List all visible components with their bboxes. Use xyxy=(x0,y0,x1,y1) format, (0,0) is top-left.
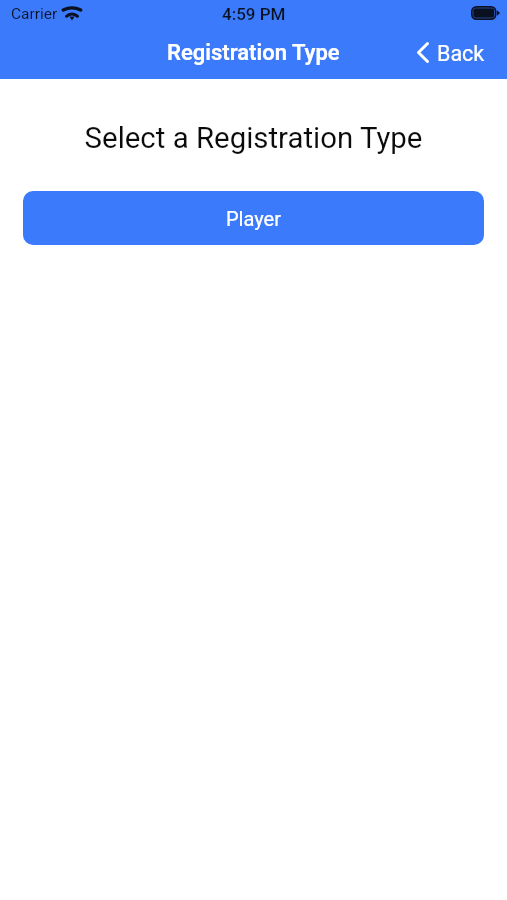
button[interactable]: Back xyxy=(405,35,507,72)
staticText: Carrier xyxy=(11,5,58,23)
staticText: Registration Type xyxy=(167,40,340,66)
other: Battery full xyxy=(471,6,500,20)
staticText: Back xyxy=(437,41,485,66)
staticText: Player xyxy=(226,207,281,230)
button[interactable]: Player xyxy=(23,191,484,245)
staticText: 4:59 PM xyxy=(222,4,286,24)
staticText: Select a Registration Type xyxy=(0,121,507,155)
other: Wi-Fi signal xyxy=(62,6,82,21)
other: Back xyxy=(417,42,429,63)
